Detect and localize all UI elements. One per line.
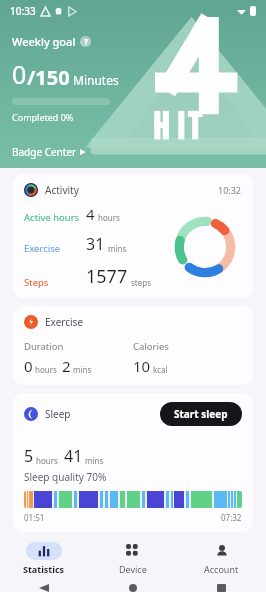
staticText: Calories [133,340,169,353]
staticText: hours [98,212,120,223]
staticText: 2 [62,356,71,376]
staticText: Sleep [45,407,71,421]
button[interactable]: Activity [13,174,253,298]
staticText: mins [108,243,127,254]
button[interactable]: Start sleep [160,402,242,426]
staticText: Start sleep [174,407,228,421]
staticText: Weekly goal [12,34,76,49]
staticText: Device [119,563,147,575]
staticText: 5 [24,445,34,467]
button[interactable]: Device [88,532,177,584]
staticText: 01:51 [24,512,45,523]
staticText: Sleep quality 70% [24,470,107,484]
staticText: 0 [24,356,33,376]
staticText: 10:32 [218,184,242,196]
staticText: Completed 0% [12,111,74,123]
button[interactable]: Badge Center [12,145,86,159]
staticText: 31 [86,233,105,255]
staticText: Steps [24,276,49,289]
staticText: 07:32 [221,512,242,523]
staticText: 10 [133,356,151,376]
staticText: Account [204,563,239,575]
staticText: Active hours [24,211,80,224]
staticText: Badge Center [12,145,77,159]
button[interactable]: Sleep [13,393,253,532]
button[interactable]: Back [0,584,88,592]
button[interactable]: Home [88,584,177,592]
staticText: Minutes [73,72,119,88]
button[interactable]: Help about weekly goal [80,36,91,47]
staticText: 1577 [86,264,128,289]
staticText: 0 [12,57,27,91]
staticText: Activity [45,183,79,197]
staticText: hours [35,364,57,375]
staticText: kcal [153,364,168,375]
button[interactable]: Recents [177,584,266,592]
staticText: mins [85,455,104,466]
button[interactable]: Account [177,532,266,584]
staticText: Statistics [23,563,65,575]
staticText: hours [36,455,58,466]
staticText: mins [73,364,92,375]
staticText: steps [131,277,151,288]
staticText: 4 [86,204,95,224]
staticText: 10:33 [10,4,36,18]
button[interactable]: Exercise [13,306,253,385]
staticText: /150 [27,64,70,91]
staticText: Duration [24,340,64,353]
staticText: Exercise [24,242,61,255]
staticText: 41 [64,445,83,467]
staticText: ? [84,36,88,47]
button[interactable]: Statistics [0,532,88,584]
staticText: Exercise [45,315,84,329]
